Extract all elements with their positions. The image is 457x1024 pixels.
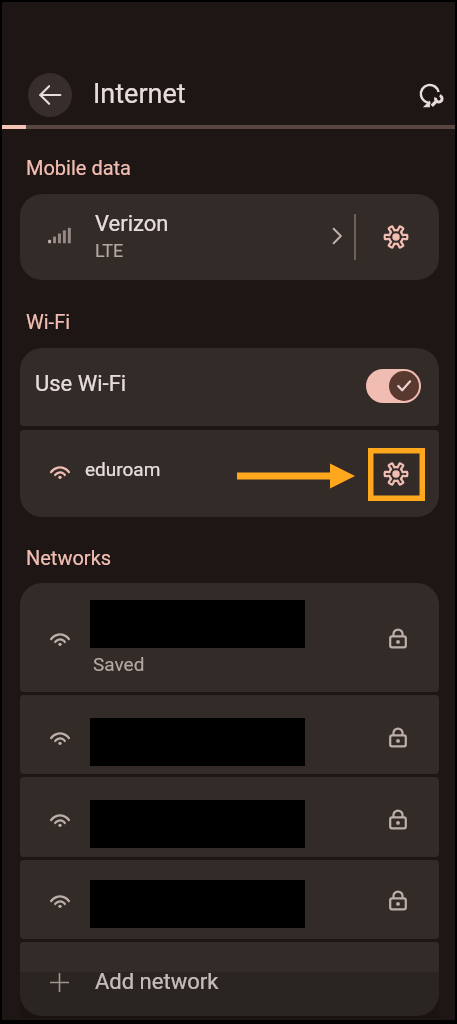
staticText: Networks: [26, 546, 112, 569]
button[interactable]: [20, 860, 439, 939]
button[interactable]: Mobile network settings: [372, 213, 420, 261]
staticText: Saved: [93, 653, 145, 675]
button[interactable]: Saved: [20, 583, 439, 692]
button[interactable]: Reset: [409, 74, 453, 118]
button[interactable]: Add network: [20, 942, 439, 1016]
staticText: Add network: [95, 969, 219, 995]
staticText: Wi-Fi: [26, 310, 71, 333]
button[interactable]: Use Wi-Fi toggle: [366, 369, 421, 403]
staticText: Mobile data: [26, 156, 131, 179]
button[interactable]: [20, 777, 439, 857]
button[interactable]: [20, 695, 439, 774]
button[interactable]: Back: [28, 73, 72, 117]
button[interactable]: Network settings: [372, 450, 420, 498]
button[interactable]: Use Wi-Fi: [20, 348, 439, 426]
staticText: Verizon: [95, 211, 169, 237]
staticText: LTE: [95, 240, 124, 261]
staticText: Use Wi-Fi: [35, 371, 127, 397]
button[interactable]: Verizon: [20, 194, 439, 280]
staticText: Internet: [93, 78, 186, 110]
button[interactable]: eduroam: [20, 430, 439, 517]
staticText: eduroam: [85, 458, 161, 480]
